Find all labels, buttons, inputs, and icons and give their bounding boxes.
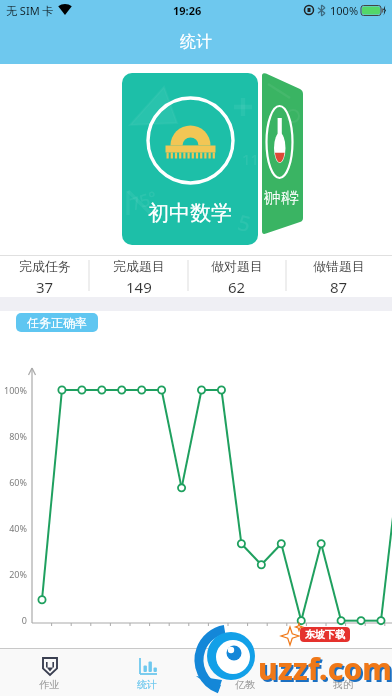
staticText: 62 [228,277,246,297]
staticText: 作业 [39,678,59,691]
staticText: 统计 [137,678,157,691]
button[interactable]: 75° [122,73,258,245]
button[interactable]: 做对题目 [188,258,286,297]
staticText: 75° [127,185,160,216]
staticText: 87 [330,277,348,297]
staticText: 40% [0,522,27,534]
button[interactable]: 亿教 [196,648,294,696]
staticText: 20% [0,568,27,580]
staticText: 100% [330,3,361,18]
button[interactable]: 任务正确率 [16,313,98,332]
staticText: 80% [0,430,27,442]
staticText: 统计 [180,32,212,52]
staticText: 完成题目 [113,258,165,274]
staticText: 我的 [333,678,353,691]
staticText: uzzf.com [260,650,392,691]
staticText: 37 [36,277,54,297]
staticText: 完成任务 [19,258,71,274]
button[interactable]: 完成题目 [89,258,188,297]
staticText: 任务正确率 [27,315,87,330]
staticText: 亿教 [235,678,255,691]
staticText: 19:26 [173,3,202,18]
staticText: 149 [126,277,152,297]
button[interactable]: 做错题目 [286,258,392,297]
staticText: 做对题目 [211,258,263,274]
button[interactable]: 我的 [294,648,392,696]
staticText: 无 SIM 卡 [6,3,54,18]
staticText: 东坡下载 [305,628,345,641]
staticText: 60% [0,476,27,488]
staticText: 做错题目 [313,258,365,274]
staticText: 11 [242,149,258,169]
button[interactable]: 作业 [0,648,98,696]
staticText: 5 [235,208,254,239]
button[interactable]: 统计 [98,648,196,696]
staticText: 初中数学 [148,200,232,226]
staticText: 0 [0,614,27,626]
staticText: 初中科学 [264,188,298,206]
button[interactable] [262,73,303,235]
staticText: uzzf.com [258,648,392,689]
staticText: 100% [0,384,27,396]
button[interactable]: 完成任务 [0,258,89,297]
